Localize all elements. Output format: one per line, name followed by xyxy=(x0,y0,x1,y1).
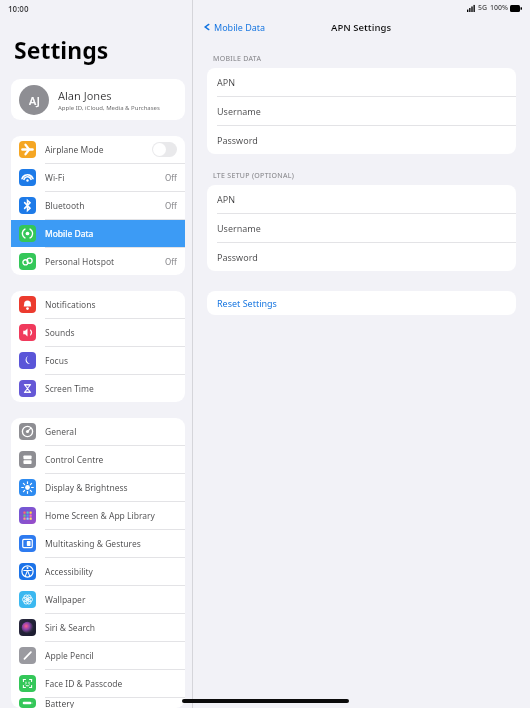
staticText: APN Settings xyxy=(331,21,392,34)
button[interactable]: Notifications xyxy=(11,291,185,318)
other: Airplane Mode toggle xyxy=(152,142,177,157)
staticText: Wallpaper xyxy=(45,594,86,606)
staticText: Mobile Data xyxy=(214,21,266,33)
button[interactable]: General xyxy=(11,418,185,445)
staticText: Screen Time xyxy=(45,383,94,395)
button[interactable]: Home Screen & App Library xyxy=(11,502,185,529)
staticText: Settings xyxy=(14,34,109,65)
staticText: APN xyxy=(217,76,236,88)
staticText: Siri & Search xyxy=(45,622,96,634)
staticText: Control Centre xyxy=(45,454,104,466)
staticText: Bluetooth xyxy=(45,200,85,212)
staticText: Username xyxy=(217,105,261,117)
staticText: Personal Hotspot xyxy=(45,256,115,268)
button[interactable]: Password xyxy=(207,243,516,271)
staticText: Airplane Mode xyxy=(45,144,104,156)
staticText: General xyxy=(45,426,77,438)
staticText: Apple ID, iCloud, Media & Purchases xyxy=(58,104,160,112)
button[interactable]: Reset Settings xyxy=(207,291,516,315)
button[interactable]: Airplane Mode xyxy=(11,136,185,163)
button[interactable]: Accessibility xyxy=(11,558,185,585)
staticText: Password xyxy=(217,251,258,263)
button[interactable]: Multitasking & Gestures xyxy=(11,530,185,557)
staticText: Mobile Data xyxy=(45,228,94,240)
staticText: APN xyxy=(217,193,236,205)
staticText: Notifications xyxy=(45,299,96,311)
button[interactable]: Password xyxy=(207,126,516,154)
staticText: 5G xyxy=(478,3,488,13)
button[interactable]: Wi-Fi xyxy=(11,164,185,191)
staticText: 100% xyxy=(490,3,508,13)
staticText: Wi-Fi xyxy=(45,172,65,184)
button[interactable]: Username xyxy=(207,214,516,242)
button[interactable]: Battery xyxy=(11,698,185,708)
button[interactable]: Face ID & Passcode xyxy=(11,670,185,697)
staticText: Off xyxy=(165,172,177,183)
button[interactable]: Apple Pencil xyxy=(11,642,185,669)
staticText: Face ID & Passcode xyxy=(45,678,123,690)
staticText: Off xyxy=(165,200,177,211)
staticText: Reset Settings xyxy=(217,297,277,309)
button[interactable]: APN xyxy=(207,185,516,213)
button[interactable]: Display & Brightness xyxy=(11,474,185,501)
staticText: Apple Pencil xyxy=(45,650,94,662)
staticText: Focus xyxy=(45,355,68,367)
button[interactable]: Mobile Data xyxy=(11,220,185,247)
button[interactable]: AJ xyxy=(11,79,185,120)
button[interactable]: Focus xyxy=(11,347,185,374)
staticText: Password xyxy=(217,134,258,146)
staticText: Off xyxy=(165,256,177,267)
staticText: 10:00 xyxy=(8,3,29,14)
button[interactable]: Screen Time xyxy=(11,375,185,402)
button[interactable]: Bluetooth xyxy=(11,192,185,219)
staticText: LTE SETUP (OPTIONAL) xyxy=(213,171,295,181)
staticText: Display & Brightness xyxy=(45,482,128,494)
button[interactable]: Personal Hotspot xyxy=(11,248,185,275)
button[interactable]: APN xyxy=(207,68,516,96)
button[interactable]: Sounds xyxy=(11,319,185,346)
button[interactable]: Mobile Data xyxy=(203,21,266,33)
staticText: Accessibility xyxy=(45,566,93,578)
button[interactable]: Wallpaper xyxy=(11,586,185,613)
button[interactable]: Siri & Search xyxy=(11,614,185,641)
button[interactable]: Username xyxy=(207,97,516,125)
staticText: Username xyxy=(217,222,261,234)
staticText: MOBILE DATA xyxy=(213,54,262,64)
button[interactable]: Control Centre xyxy=(11,446,185,473)
staticText: AJ xyxy=(29,93,40,108)
staticText: Alan Jones xyxy=(58,88,112,103)
staticText: Battery xyxy=(45,698,75,708)
staticText: Sounds xyxy=(45,327,75,339)
staticText: Home Screen & App Library xyxy=(45,510,155,522)
staticText: Multitasking & Gestures xyxy=(45,538,141,550)
